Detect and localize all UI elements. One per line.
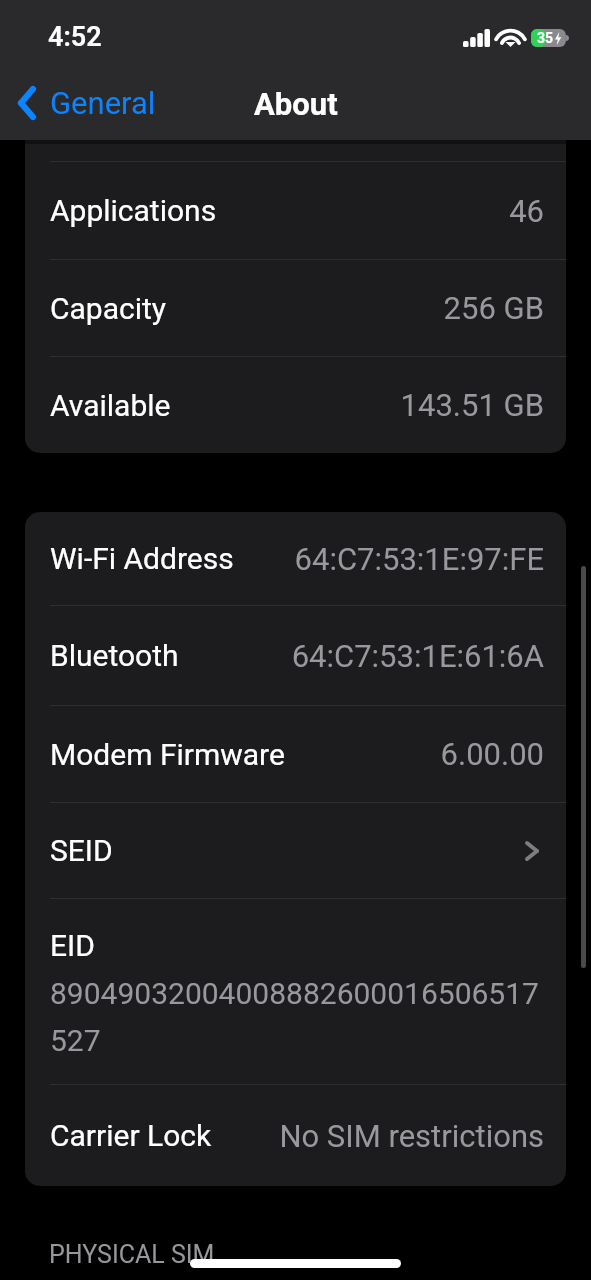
button[interactable]: Bluetooth bbox=[25, 606, 566, 705]
staticText: PHYSICAL SIM bbox=[49, 1240, 215, 1269]
staticText: 64:C7:53:1E:61:6A bbox=[291, 638, 544, 674]
staticText: Capacity bbox=[50, 291, 167, 326]
other: Back bbox=[18, 86, 36, 120]
button[interactable]: Applications bbox=[25, 162, 566, 259]
staticText: Carrier Lock bbox=[50, 1118, 212, 1153]
staticText: 6.00.00 bbox=[440, 736, 544, 772]
staticText: Bluetooth bbox=[50, 638, 179, 673]
staticText: Applications bbox=[50, 193, 217, 228]
button[interactable]: Capacity bbox=[25, 260, 566, 356]
staticText: Modem Firmware bbox=[50, 737, 285, 772]
staticText: SEID bbox=[50, 833, 113, 868]
staticText: 64:C7:53:1E:97:FE bbox=[294, 541, 544, 577]
button[interactable]: Available bbox=[25, 357, 566, 453]
staticText: EID bbox=[50, 928, 95, 963]
staticText: Wi-Fi Address bbox=[50, 541, 234, 576]
staticText: 256 GB bbox=[443, 290, 544, 326]
staticText: 89049032004008882600016506517 527 bbox=[50, 976, 539, 1059]
staticText: General bbox=[50, 85, 156, 121]
staticText: 4:52 bbox=[48, 21, 102, 53]
button[interactable]: Modem Firmware bbox=[25, 706, 566, 802]
staticText: 46 bbox=[509, 193, 544, 229]
staticText: 143.51 GB bbox=[400, 387, 544, 423]
staticText: 35 bbox=[537, 30, 554, 46]
button[interactable]: Carrier Lock bbox=[25, 1085, 566, 1186]
button[interactable]: Wi-Fi Address bbox=[25, 512, 566, 605]
button[interactable]: SEID bbox=[25, 803, 566, 898]
button[interactable]: Back bbox=[0, 81, 166, 125]
other: Open SEID bbox=[525, 841, 539, 861]
button[interactable]: EID bbox=[25, 899, 566, 1084]
staticText: No SIM restrictions bbox=[279, 1118, 544, 1154]
staticText: Available bbox=[50, 388, 171, 423]
staticText: About bbox=[254, 86, 338, 122]
